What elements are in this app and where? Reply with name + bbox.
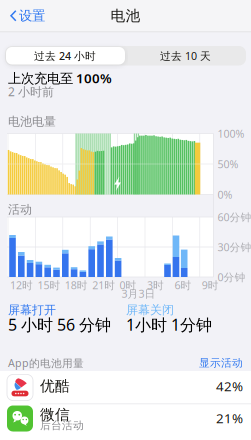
- staticText: 后台活动: [40, 419, 84, 432]
- staticText: 3时: [147, 278, 164, 292]
- staticText: 21时: [92, 278, 115, 292]
- staticText: 屏幕关闭: [126, 303, 174, 317]
- staticText: 2 小时前: [8, 83, 54, 99]
- staticText: 15时: [37, 278, 60, 292]
- staticText: 3月3日: [121, 286, 155, 301]
- staticText: 60分钟: [217, 210, 251, 224]
- staticText: 100%: [217, 126, 244, 141]
- staticText: 21%: [216, 409, 243, 427]
- staticText: 12时: [10, 278, 33, 292]
- staticText: 42%: [216, 377, 243, 395]
- staticText: 0%: [217, 187, 232, 202]
- staticText: 30分钟: [217, 240, 251, 254]
- staticText: 设置: [19, 8, 45, 24]
- button[interactable]: 微信: [0, 404, 251, 440]
- button[interactable]: 显示活动: [173, 356, 243, 370]
- staticText: 0分钟: [217, 270, 245, 284]
- staticText: 5 小时 56 分钟: [8, 314, 111, 335]
- staticText: 过去 10 天: [160, 49, 211, 63]
- staticText: 优酷: [40, 377, 70, 395]
- staticText: 18时: [65, 278, 88, 292]
- staticText: 1小时 1分钟: [126, 314, 212, 335]
- button[interactable]: 优酷: [0, 371, 251, 403]
- staticText: 6时: [174, 278, 191, 292]
- button[interactable]: 过去 10 天: [125, 46, 245, 65]
- button[interactable]: 过去 24 小时: [5, 46, 125, 65]
- staticText: 微信: [40, 406, 70, 424]
- staticText: 上次充电至 100%: [8, 69, 112, 87]
- staticText: 电池电量: [8, 114, 56, 129]
- staticText: 电池: [110, 7, 140, 25]
- staticText: 屏幕打开: [8, 303, 56, 317]
- staticText: 显示活动: [199, 356, 243, 369]
- staticText: 50%: [217, 157, 238, 171]
- staticText: 过去 24 小时: [34, 49, 96, 63]
- staticText: 0时: [120, 278, 137, 292]
- staticText: 9时: [202, 278, 219, 292]
- staticText: 活动: [8, 202, 32, 217]
- staticText: App的电池用量: [8, 356, 84, 370]
- button[interactable]: 设置: [0, 0, 39, 31]
